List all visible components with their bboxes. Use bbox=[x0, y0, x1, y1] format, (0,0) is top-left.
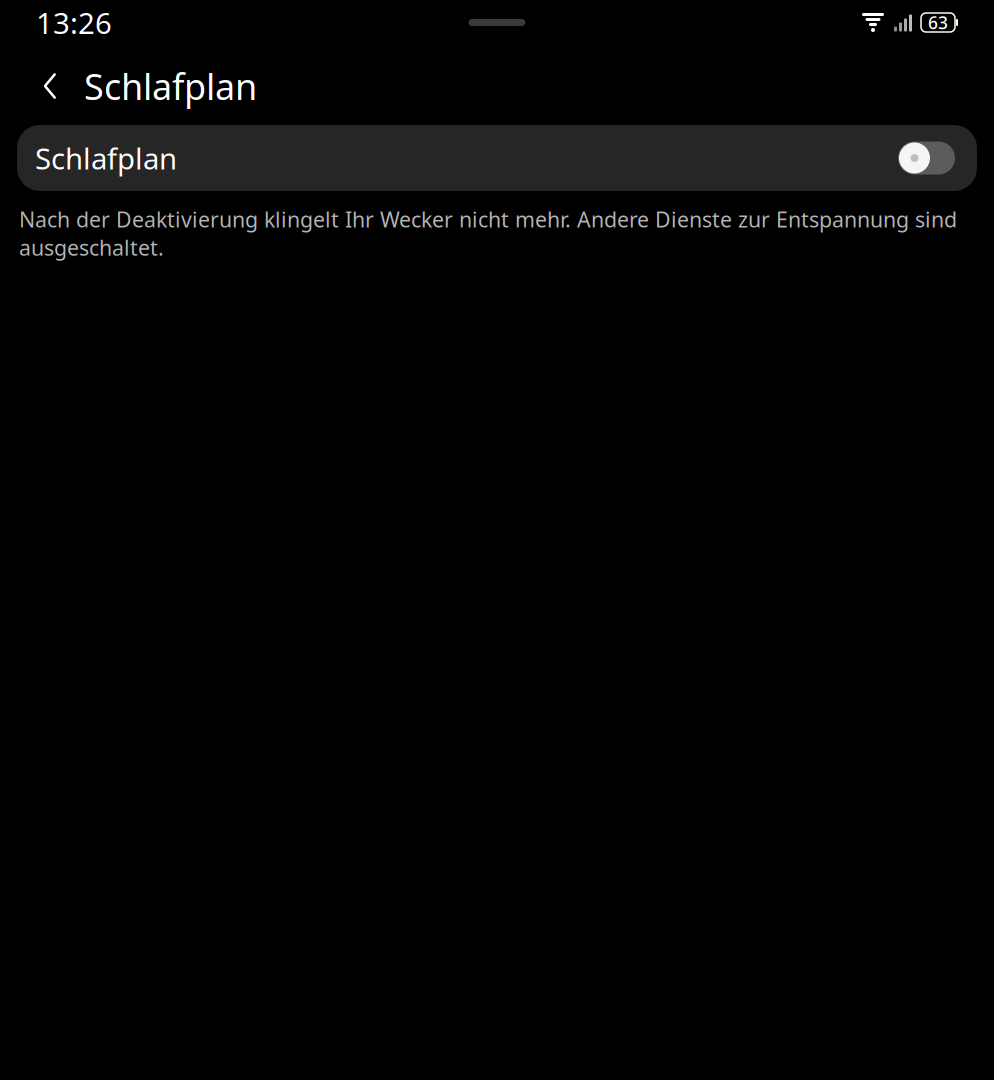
button[interactable]: Back bbox=[27, 61, 73, 111]
staticText: Schlafplan bbox=[35, 138, 177, 177]
staticText: 63 bbox=[928, 11, 948, 34]
staticText: Nach der Deaktivierung klingelt Ihr Weck… bbox=[19, 205, 957, 262]
staticText: Schlafplan bbox=[84, 62, 257, 110]
button[interactable]: Schlafplan bbox=[17, 125, 977, 191]
staticText: 13:26 bbox=[36, 3, 112, 42]
